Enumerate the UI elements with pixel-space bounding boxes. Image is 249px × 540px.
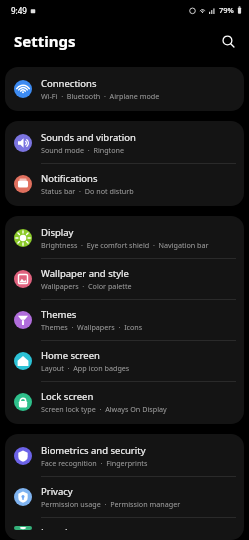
staticText: Privacy bbox=[41, 485, 73, 498]
button[interactable]: Privacy bbox=[5, 477, 244, 517]
staticText: Screen lock type · Always On Display bbox=[41, 404, 167, 414]
staticText: Wallpapers · Color palette bbox=[41, 281, 132, 291]
staticText: Sound mode · Ringtone bbox=[41, 145, 125, 155]
staticText: Wi-Fi · Bluetooth · Airplane mode bbox=[41, 91, 160, 101]
button[interactable]: Wallpaper and style bbox=[5, 259, 244, 299]
staticText: Lock screen bbox=[41, 390, 94, 403]
staticText: 9:49 bbox=[11, 5, 27, 16]
staticText: Wallpaper and style bbox=[41, 267, 129, 280]
staticText: Face recognition · Fingerprints bbox=[41, 458, 148, 468]
staticText: Permission usage · Permission manager bbox=[41, 499, 181, 509]
button[interactable]: Notifications bbox=[5, 164, 244, 204]
button[interactable]: Themes bbox=[5, 300, 244, 340]
button[interactable]: Lock screen bbox=[5, 382, 244, 422]
button[interactable]: Display bbox=[5, 218, 244, 258]
staticText: Sounds and vibration bbox=[41, 131, 136, 144]
staticText: Status bar · Do not disturb bbox=[41, 186, 134, 196]
staticText: Layout · App icon badges bbox=[41, 363, 130, 373]
staticText: Brightness · Eye comfort shield · Naviga… bbox=[41, 240, 209, 250]
staticText: Display bbox=[41, 226, 74, 239]
staticText: Notifications bbox=[41, 172, 98, 185]
button[interactable]: Home screen bbox=[5, 341, 244, 381]
staticText: Settings bbox=[14, 31, 76, 51]
staticText: Location bbox=[41, 526, 80, 530]
staticText: 79% bbox=[219, 5, 234, 15]
staticText: Home screen bbox=[41, 349, 100, 362]
button[interactable]: Search settings bbox=[215, 28, 241, 54]
button[interactable]: Sounds and vibration bbox=[5, 123, 244, 163]
button[interactable]: Connections bbox=[5, 69, 244, 109]
staticText: Connections bbox=[41, 77, 97, 90]
button[interactable]: Biometrics and security bbox=[5, 436, 244, 476]
staticText: Themes bbox=[41, 308, 77, 321]
staticText: Biometrics and security bbox=[41, 444, 146, 457]
staticText: Themes · Wallpapers · Icons bbox=[41, 322, 143, 332]
button[interactable]: Location bbox=[5, 518, 244, 538]
